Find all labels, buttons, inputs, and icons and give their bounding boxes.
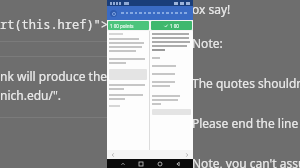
staticText: Please end the line o: [192, 115, 300, 131]
button[interactable]: 1 00 points: [108, 21, 149, 30]
button[interactable]: Back: [174, 160, 181, 167]
button[interactable]: Recent apps: [137, 160, 144, 167]
staticText: nk will produce the al: [0, 68, 112, 84]
staticText: rt(this.href)">U: [0, 16, 112, 32]
button[interactable]: Previous: [110, 152, 116, 158]
staticText: Note:: [192, 35, 223, 51]
button[interactable]: Next: [184, 152, 190, 158]
staticText: 1 00: [170, 23, 179, 29]
button[interactable]: 1 00: [151, 21, 192, 30]
button[interactable]: Home: [156, 160, 163, 167]
staticText: ox say!: [192, 1, 231, 17]
button[interactable]: Hide keyboard: [119, 160, 126, 167]
staticText: Note, you can't assur: [192, 155, 300, 168]
staticText: 1 00 points: [110, 23, 134, 29]
staticText: The quotes shouldn't: [192, 75, 300, 91]
button[interactable]: Navigation: [110, 10, 117, 17]
staticText: nich.edu/".: [0, 87, 62, 103]
